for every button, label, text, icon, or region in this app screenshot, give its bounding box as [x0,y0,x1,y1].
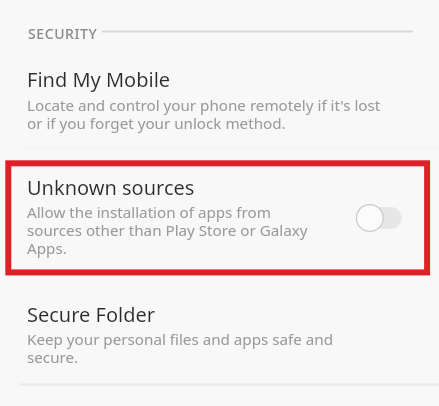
staticText: Keep your personal files and apps safe a… [27,329,334,350]
staticText: or if you forget your unlock method. [27,113,286,134]
staticText: Find My Mobile [27,66,171,93]
staticText: Allow the installation of apps from [27,202,271,223]
button[interactable]: Secure Folder [0,296,439,384]
staticText: Unknown sources [27,174,195,201]
button[interactable]: Unknown sources switch, off [352,202,408,234]
button[interactable]: Unknown sources [0,150,439,294]
staticText: Apps. [27,238,67,259]
staticText: secure. [27,347,79,368]
button[interactable]: Find My Mobile [0,50,439,148]
staticText: SECURITY [28,24,98,43]
staticText: Secure Folder [27,301,156,328]
staticText: Locate and control your phone remotely i… [27,95,381,116]
staticText: sources other than Play Store or Galaxy [27,220,308,241]
